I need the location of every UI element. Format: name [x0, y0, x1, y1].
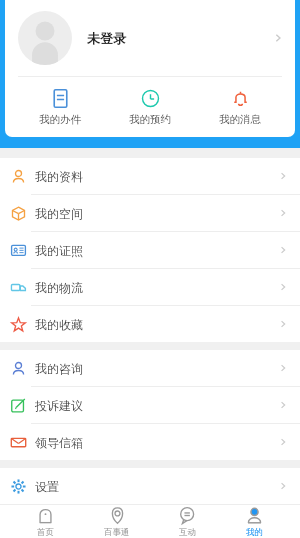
button[interactable]: 我的	[234, 505, 275, 538]
staticText: 首页	[37, 527, 54, 536]
button[interactable]: 我的收藏	[0, 306, 300, 342]
button[interactable]: 互动	[167, 505, 208, 538]
staticText: 我的证照	[35, 243, 83, 258]
staticText: 我的资料	[35, 169, 83, 184]
staticText: 我的咨询	[35, 361, 83, 376]
button[interactable]: 我的空间	[0, 195, 300, 232]
button[interactable]: 我的资料	[0, 158, 300, 195]
staticText: 投诉建议	[35, 398, 83, 413]
button[interactable]: 未登录	[5, 0, 295, 76]
button[interactable]: 首页	[25, 505, 66, 538]
button[interactable]: 我的咨询	[0, 350, 300, 387]
staticText: 百事通	[104, 527, 130, 536]
staticText: 我的收藏	[35, 317, 83, 332]
button[interactable]: 我的证照	[0, 232, 300, 269]
button[interactable]: 我的物流	[0, 269, 300, 306]
staticText: 我的预约	[129, 113, 171, 126]
staticText: 设置	[35, 479, 59, 494]
button[interactable]: 我的办件	[25, 85, 95, 130]
staticText: 我的空间	[35, 206, 83, 221]
staticText: 我的办件	[39, 113, 81, 126]
button[interactable]: 投诉建议	[0, 387, 300, 424]
staticText: 未登录	[87, 30, 126, 46]
button[interactable]: 我的预约	[115, 85, 185, 130]
staticText: 互动	[179, 527, 196, 536]
button[interactable]: 领导信箱	[0, 424, 300, 460]
button[interactable]: 百事通	[92, 505, 142, 538]
button[interactable]: 我的消息	[205, 85, 275, 130]
staticText: 我的物流	[35, 280, 83, 295]
staticText: 我的消息	[219, 113, 261, 126]
button[interactable]: 设置	[0, 468, 300, 504]
staticText: 领导信箱	[35, 435, 83, 450]
staticText: 我的	[246, 527, 263, 536]
